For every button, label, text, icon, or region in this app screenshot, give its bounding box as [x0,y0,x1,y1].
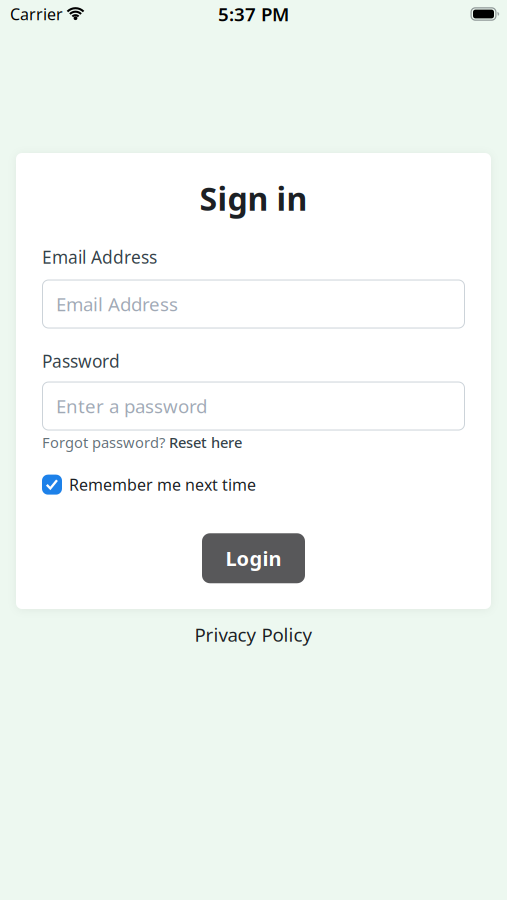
staticText: Carrier [10,3,63,25]
staticText: Email Address [56,292,178,316]
button[interactable]: Email Address [42,279,465,328]
button[interactable]: Privacy Policy [194,622,312,647]
staticText: Sign in [199,177,307,219]
staticText: Forgot password? [42,432,165,452]
button[interactable]: Enter a password [42,381,465,430]
staticText: Password [42,349,120,372]
staticText: Login [225,545,281,572]
button[interactable]: Remember me next time [42,474,256,495]
button[interactable]: Reset here [169,432,242,452]
staticText: 5:37 PM [218,2,289,26]
staticText: Privacy Policy [194,622,312,647]
staticText: Enter a password [56,394,207,418]
staticText: Remember me next time [69,474,256,495]
staticText: Email Address [42,245,157,268]
button[interactable]: Login [202,533,305,583]
staticText: Reset here [169,432,242,452]
